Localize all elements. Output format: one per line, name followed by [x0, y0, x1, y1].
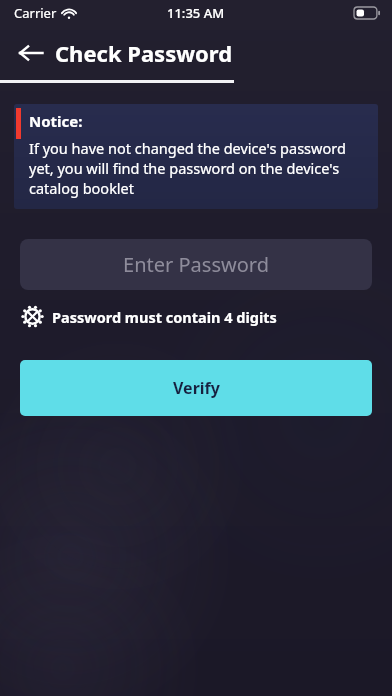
staticText: Check Password	[55, 38, 233, 68]
staticText: Enter Password	[123, 251, 269, 278]
staticText: Notice:	[29, 111, 83, 131]
staticText: Carrier	[14, 4, 57, 22]
button[interactable]: Back	[14, 36, 48, 70]
staticText: Password must contain 4 digits	[52, 307, 277, 327]
button[interactable]: Verify	[20, 360, 372, 416]
staticText: If you have not changed the device's pas…	[29, 138, 366, 198]
button[interactable]: Enter Password	[20, 239, 372, 290]
staticText: Verify	[173, 377, 220, 399]
staticText: 11:35 AM	[167, 4, 225, 22]
